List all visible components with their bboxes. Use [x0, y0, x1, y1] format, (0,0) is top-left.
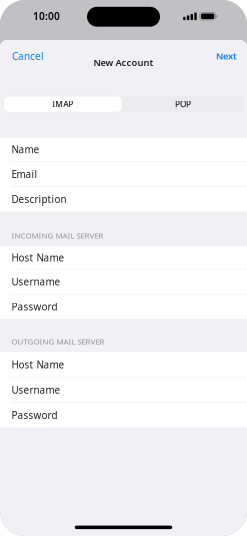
staticText: Cancel [12, 49, 44, 63]
staticText: 10:00 [33, 9, 60, 23]
button[interactable]: Host Name [0, 246, 247, 269]
button[interactable]: Username [0, 377, 247, 403]
button[interactable]: Cancel [0, 45, 53, 67]
staticText: Host Name [11, 358, 64, 371]
staticText: Password [11, 300, 57, 313]
staticText: Description [11, 192, 66, 206]
button[interactable]: Host Name [0, 352, 247, 377]
staticText: Password [11, 408, 57, 422]
staticText: New Account [93, 56, 153, 69]
button[interactable]: Username [0, 269, 247, 295]
button[interactable]: Email [0, 162, 247, 187]
staticText: Email [11, 167, 37, 181]
staticText: Name [11, 143, 39, 156]
staticText: OUTGOING MAIL SERVER [11, 336, 104, 347]
button[interactable]: Password [0, 295, 247, 319]
staticText: Username [11, 275, 60, 288]
staticText: Host Name [11, 251, 64, 264]
staticText: INCOMING MAIL SERVER [11, 230, 103, 241]
button[interactable]: POP [122, 96, 244, 112]
staticText: IMAP [52, 98, 73, 110]
staticText: Next [216, 50, 237, 62]
button[interactable]: Next [205, 46, 247, 66]
button[interactable]: Description [0, 187, 247, 211]
button[interactable]: Name [0, 138, 247, 162]
button[interactable]: IMAP [3, 96, 122, 112]
staticText: Username [11, 383, 60, 397]
button[interactable]: Password [0, 403, 247, 427]
staticText: POP [175, 98, 191, 110]
